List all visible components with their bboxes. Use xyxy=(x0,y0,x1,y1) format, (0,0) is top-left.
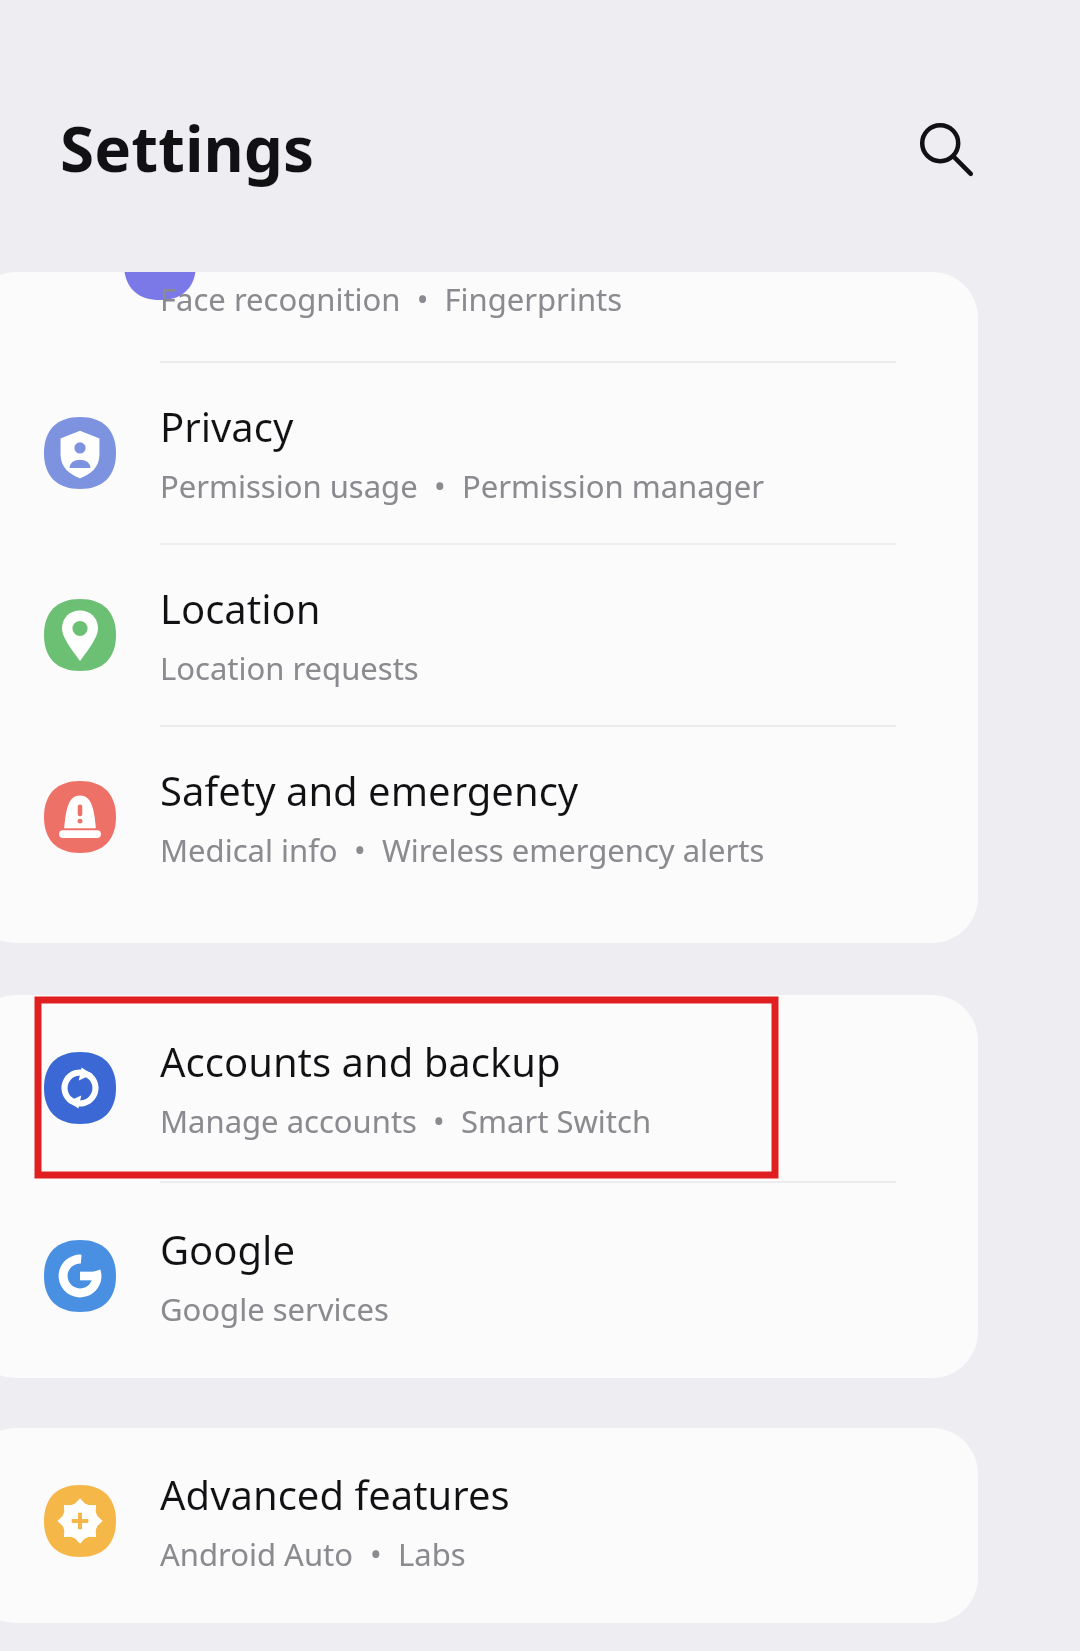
staticText: Location xyxy=(160,581,321,635)
staticText: Permission manager xyxy=(462,465,764,507)
button[interactable]: Accounts and backup xyxy=(0,995,978,1181)
staticText: Face recognition • Fingerprints xyxy=(160,278,623,320)
staticText: Safety and emergency xyxy=(160,763,579,817)
staticText: Location requests xyxy=(160,647,419,689)
staticText: Permission usage xyxy=(160,465,418,507)
staticText: Labs xyxy=(398,1533,466,1575)
staticText: • xyxy=(354,1533,398,1575)
staticText: Manage accounts xyxy=(160,1100,417,1142)
staticText: Privacy xyxy=(160,399,294,453)
staticText: Smart Switch xyxy=(461,1100,652,1142)
button[interactable]: Google xyxy=(0,1183,978,1369)
button[interactable]: Advanced features xyxy=(0,1428,978,1614)
button[interactable]: Location xyxy=(0,545,978,725)
staticText: Settings xyxy=(60,106,315,190)
staticText: Google services xyxy=(160,1288,389,1330)
staticText: • xyxy=(417,1100,461,1142)
button[interactable]: Search xyxy=(885,88,1005,208)
button[interactable]: Privacy xyxy=(0,363,978,543)
staticText: • xyxy=(338,829,382,871)
staticText: Wireless emergency alerts xyxy=(382,829,765,871)
staticText: • xyxy=(418,465,462,507)
button[interactable]: Safety and emergency xyxy=(0,727,978,907)
staticText: Medical info xyxy=(160,829,338,871)
staticText: Accounts and backup xyxy=(160,1034,561,1088)
staticText: Google xyxy=(160,1222,295,1276)
staticText: Advanced features xyxy=(160,1467,510,1521)
staticText: Android Auto xyxy=(160,1533,354,1575)
